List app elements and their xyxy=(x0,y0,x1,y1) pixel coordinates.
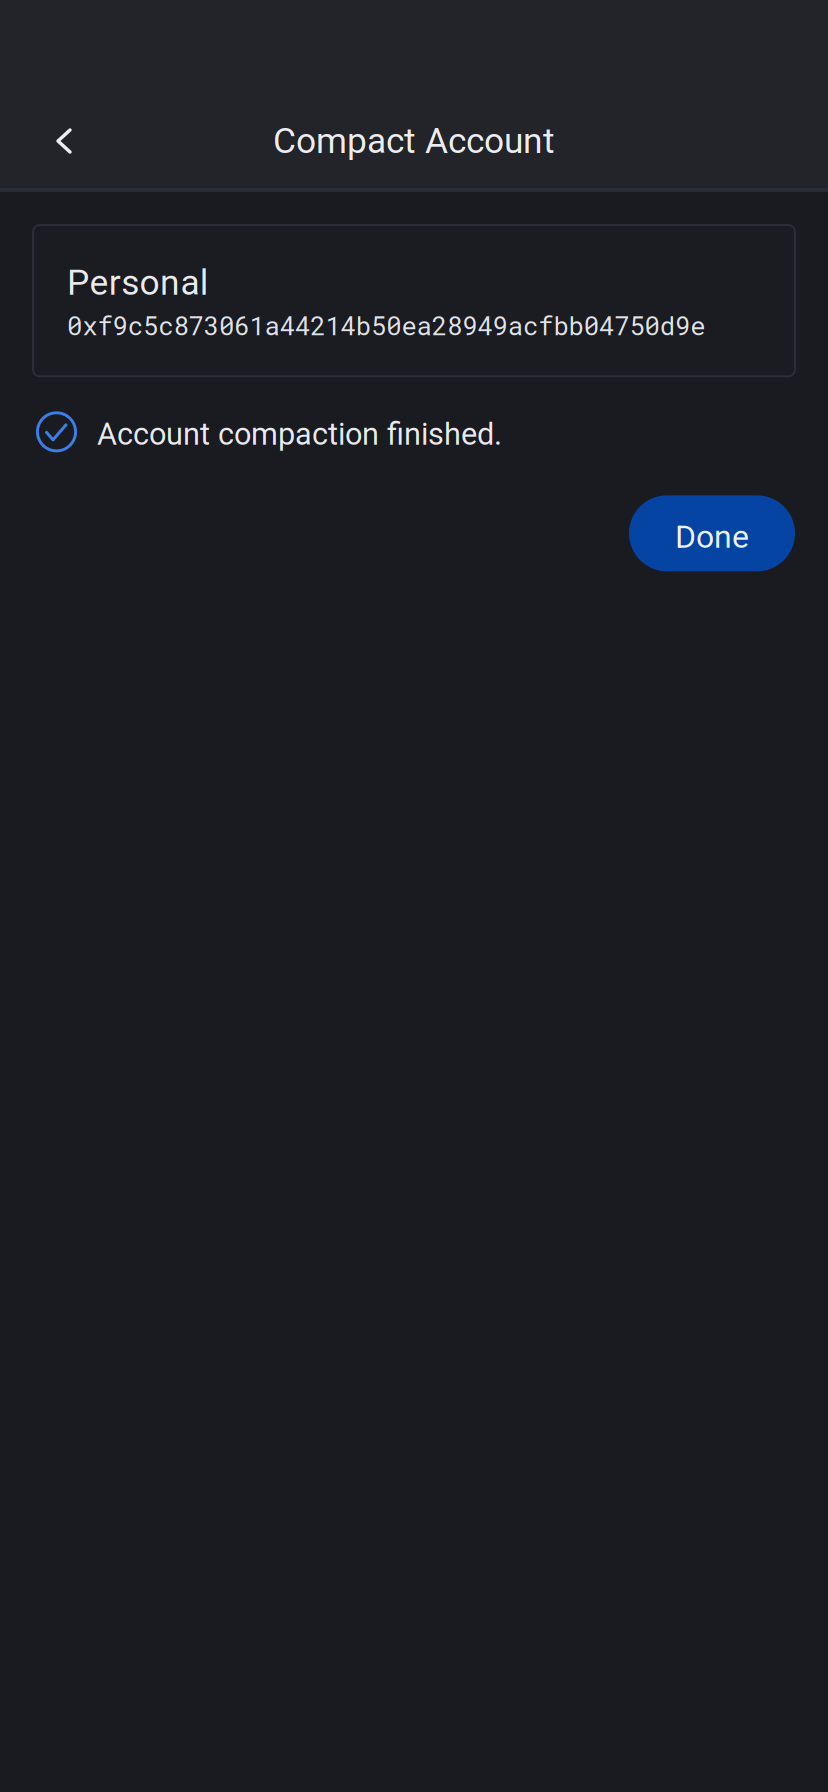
button[interactable]: Done xyxy=(629,495,795,571)
staticText: Personal xyxy=(67,262,209,303)
staticText: 0xf9c5c873061a44214b50ea28949acfbb04750d… xyxy=(67,308,705,342)
staticText: Account compaction finished. xyxy=(97,416,502,452)
button[interactable]: Back xyxy=(28,99,100,183)
staticText: Compact Account xyxy=(273,120,555,162)
staticText: Done xyxy=(675,518,749,556)
